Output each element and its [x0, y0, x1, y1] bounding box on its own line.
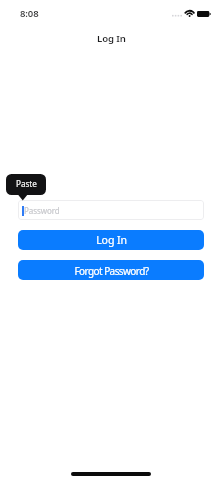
button[interactable]: Forgot Password? [18, 260, 204, 280]
button[interactable]: Paste [6, 174, 46, 195]
staticText: Forgot Password? [74, 264, 149, 278]
staticText: Password [24, 205, 60, 216]
staticText: Log In [96, 233, 127, 247]
staticText: 8:08 [20, 7, 39, 20]
button[interactable]: Log In [18, 230, 204, 250]
staticText: Log In [97, 32, 126, 45]
staticText: Paste [16, 178, 37, 189]
button[interactable]: Password [18, 200, 204, 220]
